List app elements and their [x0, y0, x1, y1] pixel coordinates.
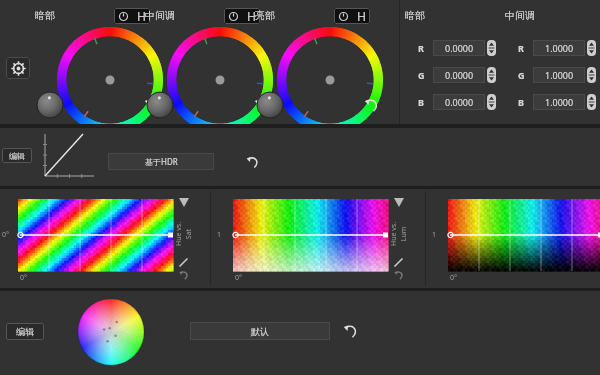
button[interactable]: Reset — [363, 96, 381, 114]
button[interactable]: Reset curve — [245, 154, 261, 170]
button[interactable]: 0.0000 — [433, 94, 496, 110]
button[interactable]: Link — [132, 8, 150, 24]
button[interactable]: Expand — [393, 197, 405, 209]
button[interactable]: Color wheel 中间调 — [167, 27, 273, 133]
button[interactable]: Luminance knob — [147, 92, 173, 118]
staticText: 0° — [450, 273, 457, 283]
staticText: 0.0000 — [445, 69, 474, 81]
other: Stepper — [487, 40, 496, 56]
button[interactable]: 基于HDR — [108, 153, 214, 170]
button[interactable]: 1.0000 — [533, 40, 596, 56]
staticText: Hue vs. Lum — [389, 218, 409, 250]
button[interactable]: Expand — [178, 197, 190, 209]
staticText: 0° — [20, 273, 27, 283]
button[interactable]: 编辑 — [6, 323, 44, 340]
staticText: 编辑 — [16, 326, 34, 337]
staticText: B — [518, 96, 524, 108]
button[interactable]: Reset wheel — [114, 8, 132, 24]
staticText: B — [418, 96, 424, 108]
button[interactable]: Link — [352, 8, 370, 24]
button[interactable]: Reset — [253, 96, 271, 114]
staticText: 基于HDR — [145, 156, 178, 167]
button[interactable]: 0.0000 — [433, 67, 496, 83]
button[interactable]: Link — [242, 8, 260, 24]
button[interactable]: Reset — [342, 322, 360, 340]
staticText: G — [518, 69, 525, 81]
staticText: 1 — [432, 230, 437, 240]
staticText: 中间调 — [145, 9, 175, 22]
button[interactable]: Hue vs. Sat — [448, 199, 600, 271]
button[interactable]: Settings — [6, 57, 30, 79]
other: Stepper — [487, 94, 496, 110]
staticText: Hue vs. Sat — [174, 218, 194, 250]
button[interactable]: Luminance knob — [37, 92, 63, 118]
button[interactable]: Color wheel 暗部 — [57, 27, 163, 133]
staticText: 1 — [217, 230, 222, 240]
other: Stepper — [587, 94, 596, 110]
button[interactable]: Reset — [143, 96, 161, 114]
button[interactable]: Color wheel 亮部 — [277, 27, 383, 133]
staticText: 0.0000 — [445, 42, 474, 54]
button[interactable]: 默认 — [190, 322, 330, 340]
button[interactable]: Reset wheel — [334, 8, 352, 24]
button[interactable]: Reset — [178, 269, 190, 281]
staticText: 1.0000 — [545, 96, 574, 108]
staticText: 中间调 — [505, 9, 535, 22]
staticText: 0° — [2, 230, 9, 240]
other: Stepper — [587, 67, 596, 83]
other: Stepper — [487, 67, 496, 83]
staticText: 0.0000 — [445, 96, 474, 108]
button[interactable]: Hue vs. Sat — [18, 199, 173, 271]
staticText: 默认 — [251, 326, 269, 337]
staticText: 暗部 — [35, 9, 55, 22]
button[interactable]: Reset — [393, 269, 405, 281]
button[interactable]: Luminance knob — [257, 92, 283, 118]
button[interactable]: Hue vs. Lum — [233, 199, 388, 271]
staticText: 1.0000 — [545, 42, 574, 54]
other: Stepper — [587, 40, 596, 56]
staticText: 编辑 — [9, 151, 25, 161]
staticText: 亮部 — [255, 9, 275, 22]
staticText: 0° — [235, 273, 242, 283]
button[interactable]: Reset wheel — [224, 8, 242, 24]
button[interactable]: 1.0000 — [533, 94, 596, 110]
staticText: R — [518, 42, 524, 54]
button[interactable]: Picker — [393, 257, 404, 268]
button[interactable]: 0.0000 — [433, 40, 496, 56]
button[interactable]: Color disc — [78, 299, 144, 365]
button[interactable]: 编辑 — [2, 148, 32, 163]
staticText: 1.0000 — [545, 69, 574, 81]
button[interactable]: Picker — [178, 257, 189, 268]
staticText: G — [418, 69, 425, 81]
staticText: 暗部 — [405, 9, 425, 22]
staticText: R — [418, 42, 424, 54]
button[interactable]: 1.0000 — [533, 67, 596, 83]
